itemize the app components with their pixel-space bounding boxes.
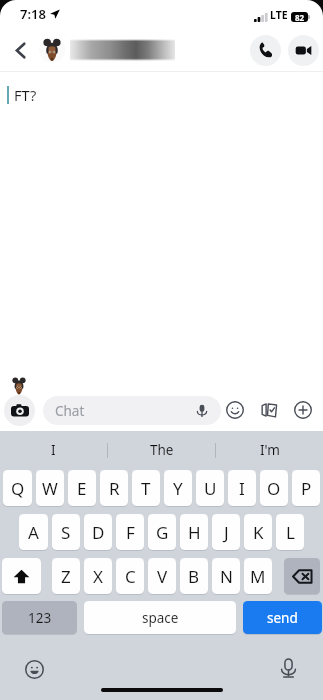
staticText: L xyxy=(286,521,295,544)
button[interactable]: S xyxy=(52,514,80,550)
button[interactable]: H xyxy=(180,514,208,550)
staticText: F xyxy=(126,521,135,544)
staticText: A xyxy=(28,521,39,544)
button[interactable]: Chat xyxy=(43,396,221,425)
staticText: FT? xyxy=(14,85,37,105)
button[interactable]: Shift xyxy=(2,558,41,594)
staticText: S xyxy=(61,521,71,544)
button[interactable]: O xyxy=(260,470,288,506)
button[interactable]: I'm xyxy=(216,437,323,463)
button[interactable]: D xyxy=(84,514,112,550)
button[interactable]: Numbers xyxy=(2,601,77,634)
button[interactable]: Backspace xyxy=(284,558,320,594)
button[interactable]: R xyxy=(100,470,128,506)
staticText: H xyxy=(188,521,201,544)
staticText: 82 xyxy=(295,12,305,22)
button[interactable] xyxy=(70,39,175,61)
staticText: B xyxy=(188,565,200,588)
button[interactable]: B xyxy=(180,558,208,594)
staticText: 123 xyxy=(28,609,52,627)
staticText: Z xyxy=(61,565,71,588)
staticText: Chat xyxy=(55,402,85,420)
staticText: Y xyxy=(173,477,183,500)
staticText: I xyxy=(239,477,245,500)
staticText: V xyxy=(157,565,168,588)
button[interactable]: M xyxy=(244,558,272,594)
staticText: send xyxy=(267,609,298,627)
button[interactable]: Video call xyxy=(288,35,319,66)
staticText: J xyxy=(224,521,229,544)
button[interactable]: Emoji xyxy=(222,397,248,423)
button[interactable]: A xyxy=(19,514,48,550)
button[interactable]: send xyxy=(243,601,322,634)
button[interactable]: V xyxy=(148,558,176,594)
staticText: P xyxy=(301,477,312,500)
button[interactable]: Call xyxy=(250,35,281,66)
button[interactable]: Emoji keyboard xyxy=(24,659,44,679)
button[interactable]: J xyxy=(212,514,240,550)
button[interactable]: F xyxy=(116,514,144,550)
staticText: The xyxy=(150,441,174,459)
button[interactable]: P xyxy=(292,470,320,506)
staticText: U xyxy=(204,477,217,500)
staticText: C xyxy=(125,565,136,588)
button[interactable]: I xyxy=(0,437,107,463)
staticText: D xyxy=(92,521,105,544)
button[interactable]: Z xyxy=(52,558,80,594)
button[interactable]: Q xyxy=(3,470,32,506)
button[interactable]: X xyxy=(84,558,112,594)
staticText: T xyxy=(141,477,151,500)
staticText: K xyxy=(253,521,264,544)
staticText: X xyxy=(93,565,103,588)
button[interactable]: T xyxy=(132,470,160,506)
staticText: O xyxy=(267,477,281,500)
staticText: I xyxy=(51,441,56,459)
button[interactable]: L xyxy=(276,514,304,550)
staticText: 7:18 xyxy=(20,5,46,23)
staticText: I'm xyxy=(260,441,280,459)
staticText: LTE xyxy=(270,8,288,22)
button[interactable]: Y xyxy=(164,470,192,506)
staticText: E xyxy=(77,477,87,500)
button[interactable]: Back xyxy=(5,35,35,65)
button[interactable]: Add attachment xyxy=(290,397,316,423)
staticText: W xyxy=(42,477,58,500)
staticText: space xyxy=(142,609,179,627)
button[interactable]: C xyxy=(116,558,144,594)
button[interactable]: W xyxy=(36,470,64,506)
button[interactable]: Stickers xyxy=(256,397,282,423)
button[interactable]: The xyxy=(108,437,215,463)
button[interactable]: E xyxy=(68,470,96,506)
button[interactable]: U xyxy=(196,470,224,506)
staticText: G xyxy=(156,521,169,544)
staticText: N xyxy=(220,565,233,588)
button[interactable]: K xyxy=(244,514,272,550)
button[interactable]: N xyxy=(212,558,240,594)
button[interactable]: I xyxy=(228,470,256,506)
staticText: M xyxy=(250,565,266,588)
button[interactable]: Voice input xyxy=(277,657,299,679)
button[interactable]: G xyxy=(148,514,176,550)
button[interactable]: Camera xyxy=(4,395,35,426)
staticText: Q xyxy=(11,477,25,500)
button[interactable]: Voice message xyxy=(194,403,210,419)
staticText: R xyxy=(109,477,120,500)
button[interactable]: space xyxy=(84,601,236,634)
